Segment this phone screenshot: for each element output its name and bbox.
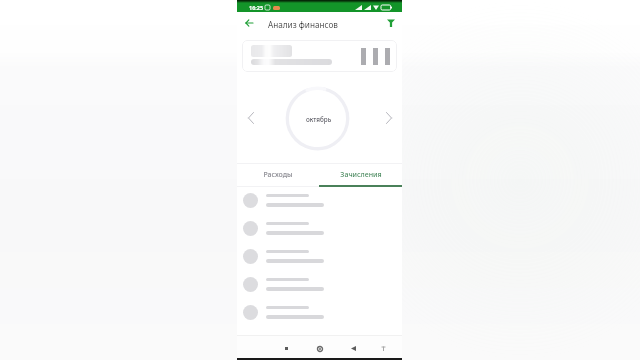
button[interactable]: Back [349, 344, 358, 353]
staticText: октябрь [306, 115, 332, 124]
button[interactable] [243, 242, 408, 270]
button[interactable]: Next month [380, 109, 398, 127]
staticText: 16:25 [249, 4, 264, 11]
button[interactable]: Filter [384, 16, 398, 30]
button[interactable] [243, 186, 408, 214]
staticText: Расходы [263, 170, 293, 180]
button[interactable]: Зачисления [319, 163, 402, 187]
button[interactable]: Расходы [237, 163, 319, 187]
button[interactable]: Back [242, 16, 256, 30]
button[interactable]: Home [315, 344, 324, 353]
button[interactable] [242, 40, 397, 72]
button[interactable] [243, 270, 408, 298]
button[interactable] [243, 298, 408, 326]
button[interactable]: Previous month [242, 109, 260, 127]
staticText: Зачисления [340, 170, 382, 180]
button[interactable] [243, 214, 408, 242]
staticText: Анализ финансов [268, 19, 338, 30]
button[interactable]: Recent apps [282, 344, 291, 353]
button[interactable]: Keyboard [379, 344, 388, 353]
